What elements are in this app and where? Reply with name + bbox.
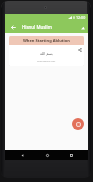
staticText: Hisnul Muslim <box>22 24 52 30</box>
button[interactable]: Recent apps <box>66 150 76 160</box>
staticText: In the name of Allah. <box>37 60 56 63</box>
button[interactable]: Share <box>77 47 83 53</box>
staticText: بسم الله <box>40 51 53 56</box>
staticText: When Starting Ablution <box>23 38 70 43</box>
button[interactable]: Bookmark <box>77 22 88 33</box>
button[interactable]: Back <box>8 21 19 33</box>
button[interactable]: When Starting Ablution <box>9 36 84 66</box>
staticText: 12:00 <box>76 15 86 20</box>
button[interactable]: Back <box>17 150 27 160</box>
button[interactable]: Home <box>42 150 52 160</box>
button[interactable]: Play audio <box>72 118 84 130</box>
